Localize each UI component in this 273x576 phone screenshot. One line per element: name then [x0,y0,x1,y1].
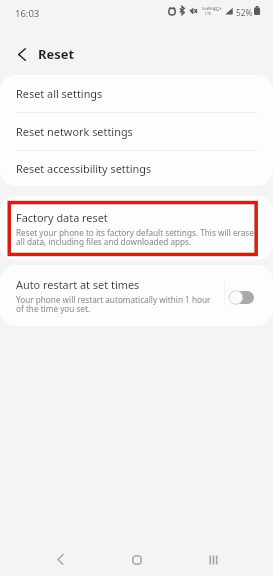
button[interactable]: Reset accessibility settings [0,151,273,186]
staticText: LTE [205,11,212,16]
button[interactable]: Recent apps [196,543,230,576]
staticText: Reset accessibility settings [16,161,152,176]
staticText: Your phone will restart automatically wi… [16,294,220,314]
staticText: Factory data reset [16,210,108,225]
staticText: Reset network settings [16,124,133,139]
button[interactable]: Navigate up [11,43,33,65]
staticText: Reset your phone to its factory default … [16,227,259,247]
staticText: 4G+ [213,6,222,13]
staticText: Auto restart at set times [16,277,140,292]
button[interactable]: Reset network settings [0,113,273,150]
button[interactable]: Home [120,543,154,576]
button[interactable]: Auto restart at set times toggle [229,290,254,305]
button[interactable]: Factory data reset [0,196,273,260]
button[interactable]: Back [43,543,77,576]
staticText: 52% [236,7,253,18]
staticText: VoWiFi [202,6,214,11]
staticText: Reset [38,45,75,63]
button[interactable]: Reset all settings [0,75,273,112]
staticText: 16:03 [15,7,40,20]
staticText: Reset all settings [16,86,103,101]
